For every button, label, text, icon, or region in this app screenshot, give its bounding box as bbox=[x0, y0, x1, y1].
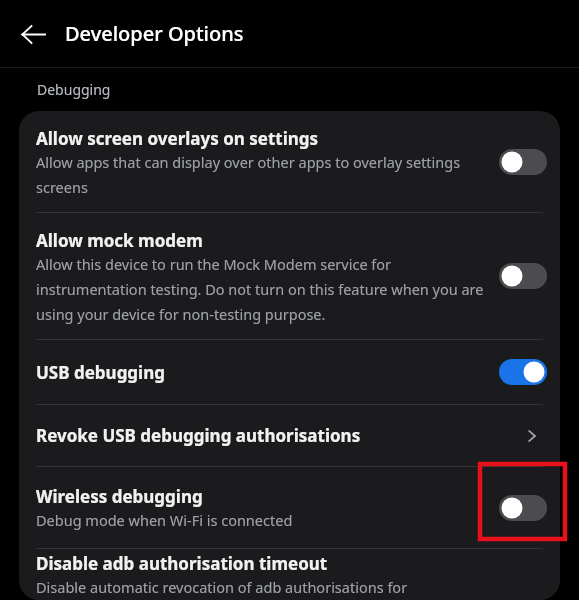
button[interactable]: USB debugging bbox=[19, 340, 560, 404]
staticText: Allow mock modem bbox=[36, 229, 203, 252]
button[interactable]: Revoke USB debugging authorisations bbox=[19, 405, 560, 466]
button[interactable]: Wireless debugging bbox=[19, 467, 560, 548]
staticText: USB debugging bbox=[36, 361, 165, 384]
button[interactable]: Open bbox=[517, 421, 547, 451]
button[interactable]: Allow mock modem bbox=[19, 213, 560, 339]
staticText: Developer Options bbox=[65, 20, 244, 47]
staticText: Debug mode when Wi-Fi is connected bbox=[36, 510, 293, 530]
button[interactable]: Disable adb authorisation timeout bbox=[19, 549, 560, 600]
staticText: Disable adb authorisation timeout bbox=[36, 552, 328, 575]
staticText: Allow apps that can display over other a… bbox=[36, 152, 491, 197]
button[interactable]: Toggle on bbox=[499, 359, 547, 385]
button[interactable]: Toggle off bbox=[499, 149, 547, 175]
staticText: Revoke USB debugging authorisations bbox=[36, 424, 361, 447]
button[interactable]: Back bbox=[13, 14, 53, 54]
button[interactable]: Toggle off bbox=[499, 495, 547, 521]
staticText: Disable automatic revocation of adb auth… bbox=[36, 577, 408, 597]
staticText: Wireless debugging bbox=[36, 485, 203, 508]
button[interactable]: Allow screen overlays on settings bbox=[19, 111, 560, 212]
staticText: Debugging bbox=[37, 80, 111, 99]
button[interactable]: Toggle off bbox=[499, 263, 547, 289]
staticText: Allow screen overlays on settings bbox=[36, 127, 319, 150]
staticText: Allow this device to run the Mock Modem … bbox=[36, 254, 491, 324]
